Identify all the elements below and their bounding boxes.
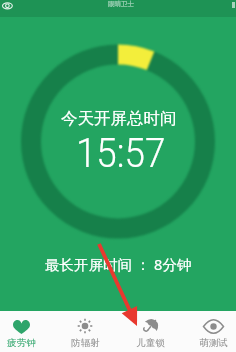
staticText: 防辐射: [71, 337, 100, 349]
button[interactable]: 萌测试: [185, 318, 236, 352]
button[interactable]: 疲劳钟: [0, 318, 49, 352]
staticText: 萌测试: [199, 337, 228, 349]
staticText: 眼睛卫士: [108, 0, 134, 8]
button[interactable]: 儿童锁: [122, 318, 178, 352]
staticText: 今天开屏总时间: [61, 108, 177, 129]
staticText: 疲劳钟: [7, 337, 36, 349]
button[interactable]: 防辐射: [57, 318, 113, 352]
staticText: 最长开屏时间 ： 8分钟: [45, 254, 192, 274]
staticText: 儿童锁: [136, 337, 165, 349]
staticText: 15:57: [76, 130, 166, 177]
